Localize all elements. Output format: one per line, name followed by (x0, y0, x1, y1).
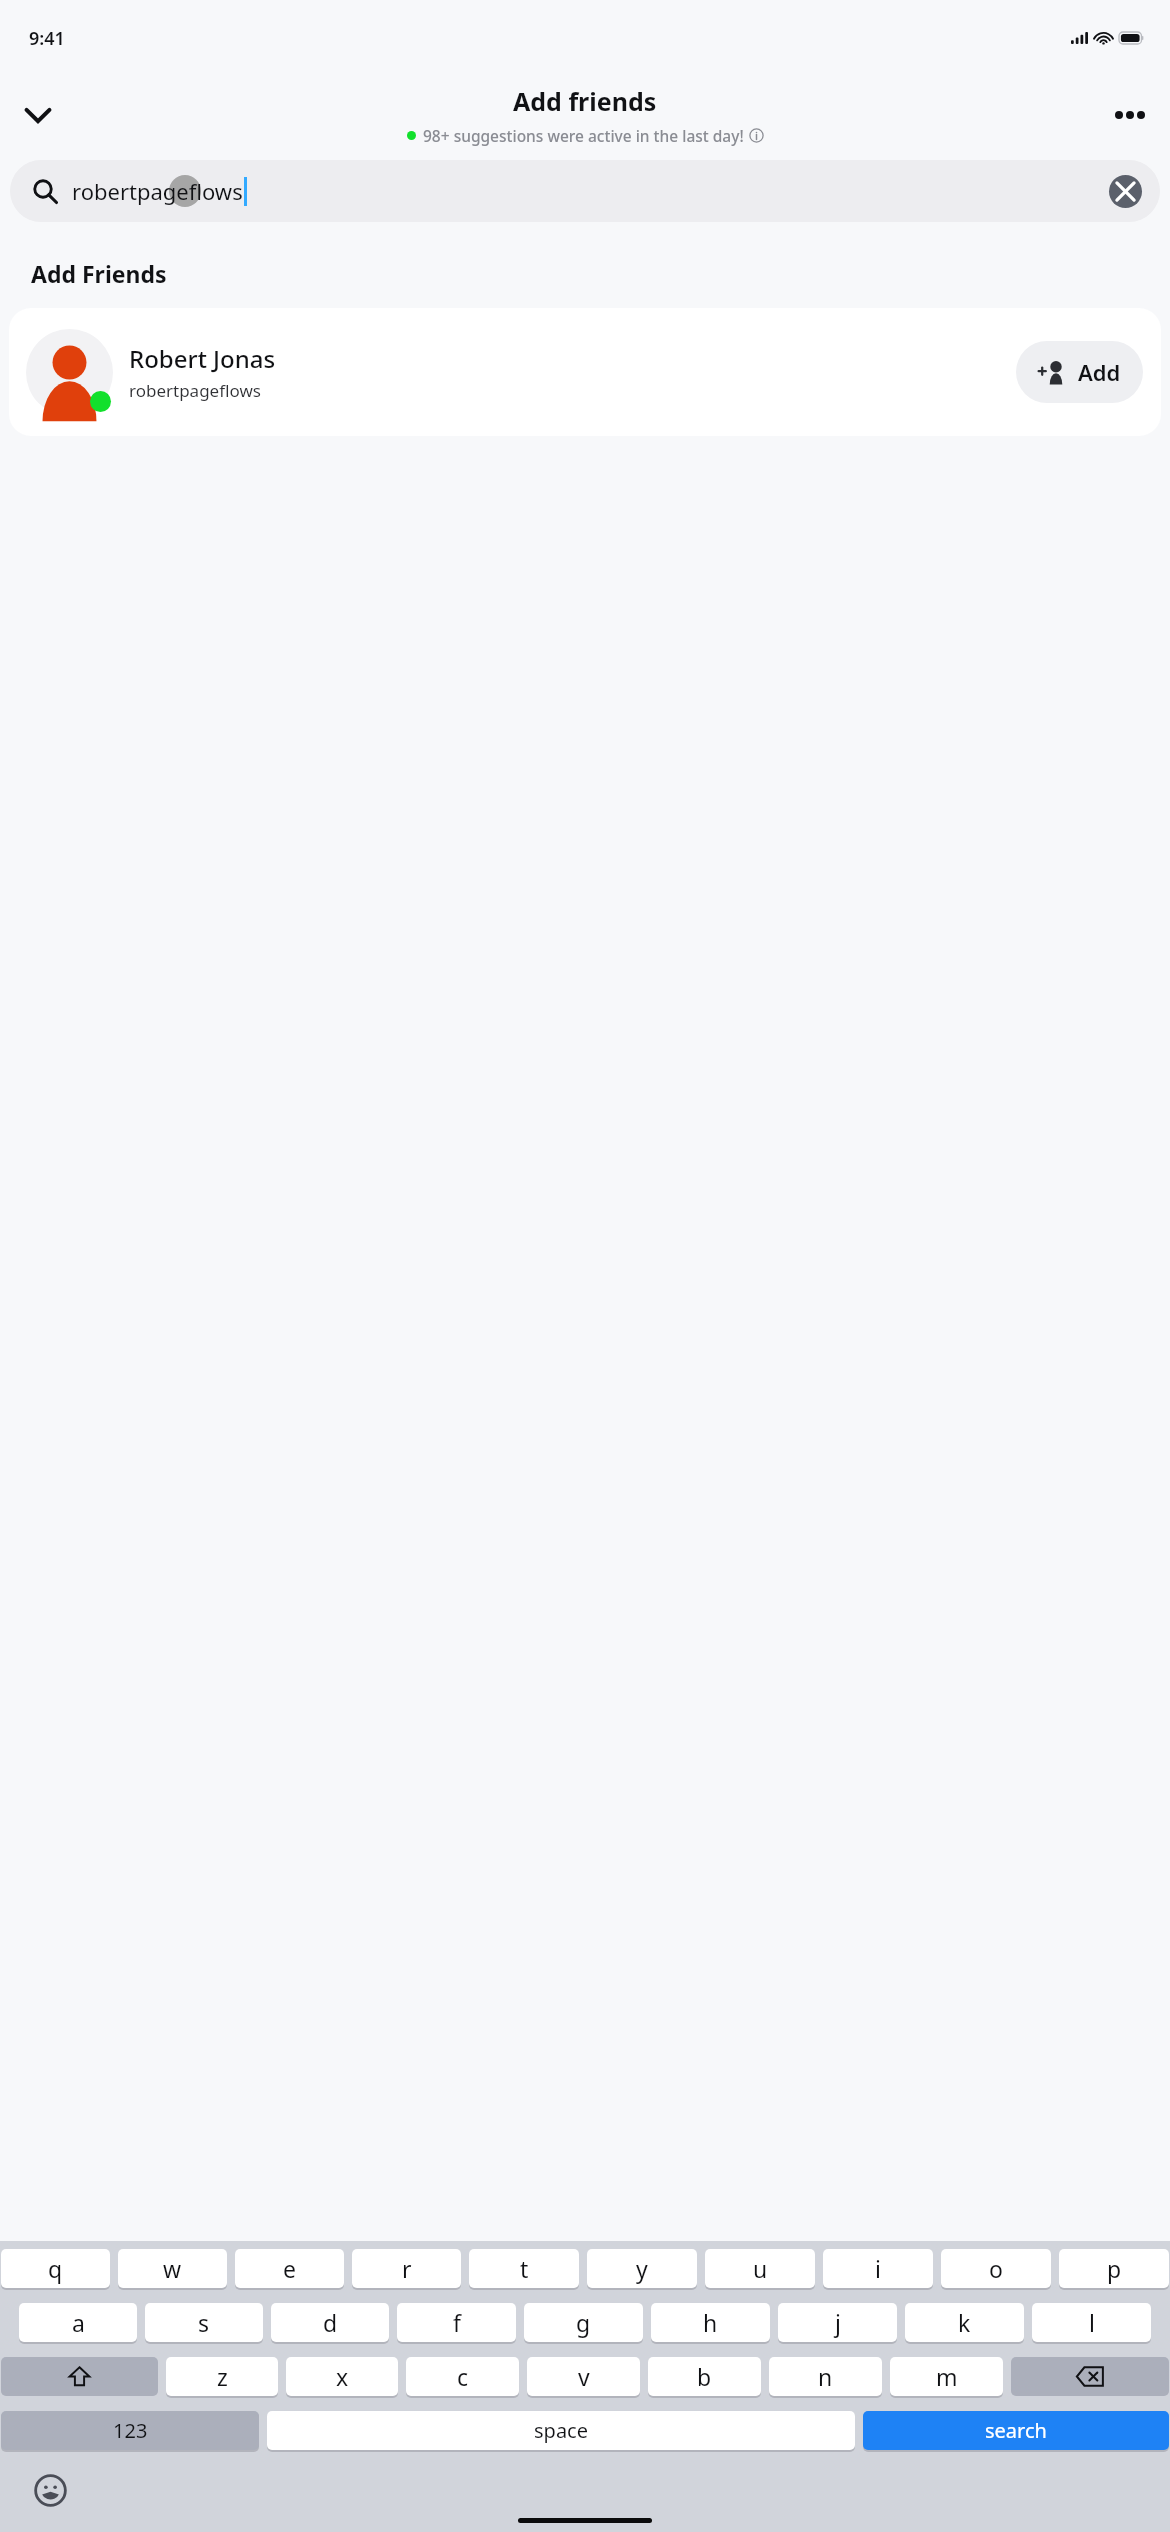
staticText: x (336, 2361, 349, 2392)
staticText: w (163, 2253, 182, 2284)
button[interactable]: 123 (1, 2411, 259, 2450)
staticText: m (936, 2361, 958, 2392)
button[interactable]: b (648, 2357, 761, 2396)
staticText: robertpageflows (129, 379, 261, 402)
staticText: s (198, 2307, 210, 2338)
staticText: space (534, 2417, 588, 2444)
button[interactable]: n (769, 2357, 882, 2396)
staticText: z (217, 2361, 228, 2392)
staticText: n (818, 2361, 833, 2392)
staticText: c (457, 2361, 469, 2392)
button[interactable]: space (267, 2411, 855, 2450)
button[interactable]: search (863, 2411, 1169, 2450)
button[interactable]: j (778, 2303, 897, 2342)
button[interactable]: More options (1098, 83, 1162, 147)
button[interactable]: i (823, 2249, 933, 2288)
button[interactable]: a (19, 2303, 137, 2342)
staticText: i (875, 2253, 881, 2284)
button[interactable]: Shift (1, 2357, 158, 2396)
staticText: k (958, 2307, 971, 2338)
button[interactable]: Robert Jonas (9, 308, 1161, 436)
staticText: Add Friends (31, 258, 167, 289)
staticText: search (985, 2417, 1047, 2444)
staticText: e (283, 2253, 296, 2284)
button[interactable]: l (1032, 2303, 1151, 2342)
staticText: d (323, 2307, 338, 2338)
button[interactable]: robertpageflows (10, 160, 1160, 222)
staticText: a (72, 2307, 85, 2338)
button[interactable]: d (271, 2303, 389, 2342)
staticText: robertpageflows (72, 176, 243, 206)
staticText: Add friends (513, 84, 657, 118)
button[interactable]: Backspace (1011, 2357, 1169, 2396)
button[interactable]: g (524, 2303, 643, 2342)
staticText: j (835, 2307, 841, 2338)
staticText: 123 (113, 2417, 148, 2444)
button[interactable]: Collapse (6, 83, 70, 147)
button[interactable]: x (286, 2357, 398, 2396)
button[interactable]: s (145, 2303, 263, 2342)
button[interactable]: Clear search (1105, 171, 1145, 211)
staticText: o (989, 2253, 1003, 2284)
button[interactable]: v (527, 2357, 640, 2396)
staticText: 9:41 (29, 26, 65, 51)
button[interactable]: e (235, 2249, 344, 2288)
staticText: t (520, 2253, 529, 2284)
staticText: y (636, 2253, 648, 2284)
staticText: l (1089, 2307, 1095, 2338)
staticText: 98+ suggestions were active in the last … (423, 125, 744, 146)
button[interactable]: w (118, 2249, 227, 2288)
button[interactable]: t (469, 2249, 579, 2288)
button[interactable]: z (166, 2357, 278, 2396)
staticText: p (1107, 2253, 1122, 2284)
button[interactable]: y (587, 2249, 697, 2288)
staticText: b (697, 2361, 712, 2392)
staticText: u (753, 2253, 768, 2284)
button[interactable]: p (1059, 2249, 1169, 2288)
button[interactable]: Add (1016, 341, 1143, 403)
staticText: f (453, 2307, 461, 2338)
button[interactable]: r (352, 2249, 461, 2288)
staticText: Robert Jonas (129, 342, 276, 375)
staticText: v (578, 2361, 590, 2392)
staticText: r (402, 2253, 412, 2284)
button[interactable]: o (941, 2249, 1051, 2288)
button[interactable]: Emoji keyboard (22, 2462, 78, 2518)
staticText: g (576, 2307, 591, 2338)
button[interactable]: u (705, 2249, 815, 2288)
button[interactable]: h (651, 2303, 770, 2342)
button[interactable]: c (406, 2357, 519, 2396)
button[interactable]: k (905, 2303, 1024, 2342)
staticText: Add (1078, 357, 1121, 387)
staticText: q (48, 2253, 63, 2284)
staticText: h (703, 2307, 718, 2338)
button[interactable]: m (890, 2357, 1003, 2396)
button[interactable]: q (1, 2249, 110, 2288)
button[interactable]: f (397, 2303, 516, 2342)
